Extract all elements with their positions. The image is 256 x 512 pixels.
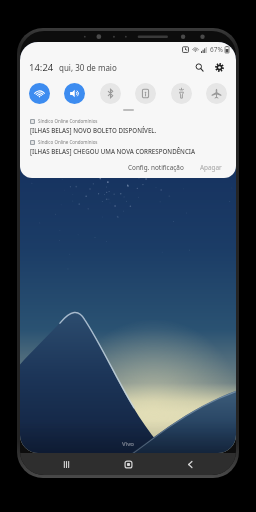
button[interactable]: Wi-Fi bbox=[29, 83, 50, 104]
staticText: [ILHAS BELAS] NOVO BOLETO DISPONÍVEL. bbox=[30, 126, 157, 134]
button[interactable]: Flashlight bbox=[171, 83, 192, 104]
button[interactable]: Config. notificação bbox=[124, 161, 188, 174]
staticText: 67% bbox=[210, 45, 223, 54]
button[interactable]: Apagar bbox=[196, 161, 226, 174]
button[interactable]: Sound bbox=[64, 83, 85, 104]
staticText: 14:24 bbox=[29, 61, 54, 74]
staticText: Síndico Online Condomínios bbox=[38, 118, 98, 124]
button[interactable]: Recents bbox=[50, 453, 82, 475]
button[interactable]: Síndico Online Condomínios bbox=[28, 138, 228, 156]
button[interactable]: Settings bbox=[211, 59, 227, 75]
button[interactable]: Home bbox=[112, 453, 144, 475]
staticText: Apagar bbox=[200, 163, 222, 172]
staticText: qui, 30 de maio bbox=[59, 62, 117, 73]
staticText: [ILHAS BELAS] CHEGOU UMA NOVA CORRESPOND… bbox=[30, 147, 226, 155]
button[interactable]: Bluetooth bbox=[100, 83, 121, 104]
button[interactable]: Do not disturb bbox=[135, 83, 156, 104]
staticText: Vivo bbox=[122, 440, 134, 448]
button[interactable]: Back bbox=[174, 453, 206, 475]
button[interactable]: Search bbox=[191, 59, 207, 75]
button[interactable]: Síndico Online Condomínios bbox=[28, 117, 228, 135]
staticText: Config. notificação bbox=[128, 163, 184, 172]
staticText: Síndico Online Condomínios bbox=[38, 139, 98, 145]
button[interactable]: Airplane mode bbox=[206, 83, 227, 104]
